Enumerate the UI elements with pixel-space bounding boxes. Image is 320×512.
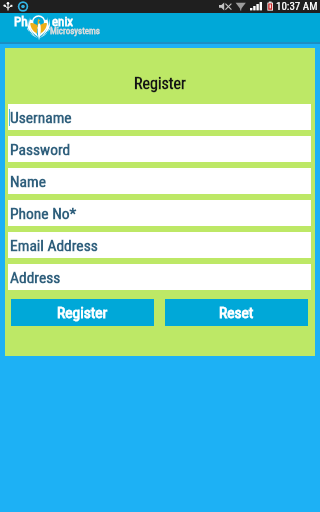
button[interactable]: Phone No*	[8, 200, 311, 226]
staticText: Name	[10, 173, 46, 191]
button[interactable]: Phoenix Microsystems	[0, 13, 320, 42]
staticText: Ph	[14, 14, 28, 29]
button[interactable]: Username	[8, 104, 311, 130]
staticText: Email Address	[10, 237, 98, 255]
button[interactable]: Name	[8, 168, 311, 194]
button[interactable]: Email Address	[8, 232, 311, 258]
button[interactable]: Address	[8, 264, 311, 290]
staticText: Username	[10, 109, 72, 127]
staticText: 10:37 AM	[276, 0, 318, 13]
button[interactable]: Reset	[165, 299, 308, 326]
staticText: Register	[57, 304, 108, 322]
button[interactable]: Register	[11, 299, 154, 326]
staticText: Register	[134, 74, 186, 93]
button[interactable]: Password	[8, 136, 311, 162]
staticText: Address	[10, 269, 61, 287]
staticText: Microsystems	[50, 26, 100, 37]
staticText: enix	[52, 14, 74, 29]
staticText: Reset	[219, 304, 254, 322]
staticText: Password	[10, 141, 71, 159]
staticText: Phone No*	[10, 205, 77, 223]
